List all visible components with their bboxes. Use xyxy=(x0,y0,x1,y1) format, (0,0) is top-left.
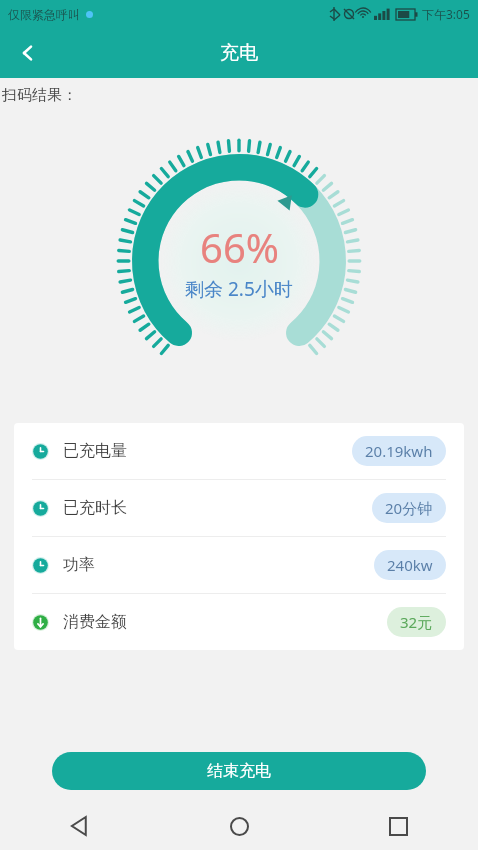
button[interactable]: Back xyxy=(0,802,160,850)
button[interactable]: Recents xyxy=(319,802,478,850)
staticText: 20.19kwh xyxy=(365,441,433,461)
staticText: 66% xyxy=(200,220,279,274)
staticText: 结束充电 xyxy=(207,761,271,781)
button[interactable]: 结束充电 xyxy=(52,752,426,790)
button[interactable]: Back xyxy=(6,31,50,75)
staticText: 20分钟 xyxy=(385,498,433,518)
staticText: 已充时长 xyxy=(63,498,127,518)
staticText: 仅限紧急呼叫 xyxy=(8,7,80,22)
button[interactable]: 消费金额 xyxy=(14,594,464,650)
button[interactable]: 已充时长 xyxy=(14,480,464,536)
staticText: 已充电量 xyxy=(63,441,127,461)
staticText: 240kw xyxy=(387,555,433,575)
staticText: 充电 xyxy=(220,41,258,65)
button[interactable]: Home xyxy=(160,802,319,850)
staticText: 下午3:05 xyxy=(422,6,470,22)
staticText: 32元 xyxy=(400,612,433,632)
button[interactable]: 已充电量 xyxy=(14,423,464,479)
staticText: 功率 xyxy=(63,555,95,575)
button[interactable]: 功率 xyxy=(14,537,464,593)
staticText: 消费金额 xyxy=(63,612,127,632)
staticText: 扫码结果： xyxy=(2,86,77,105)
staticText: 剩余 2.5小时 xyxy=(185,276,293,302)
